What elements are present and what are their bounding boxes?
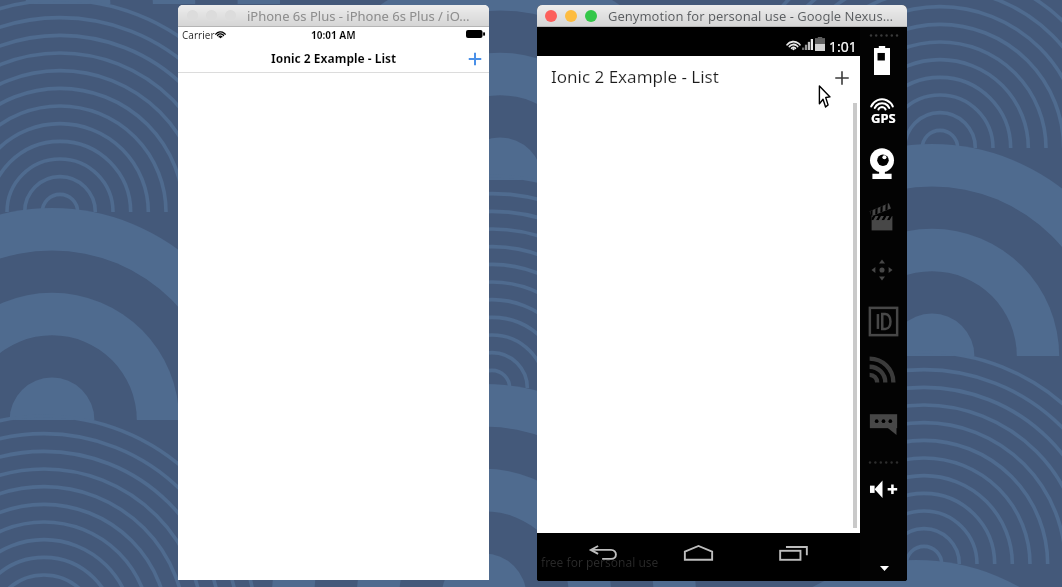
- button[interactable]: GPS: [865, 93, 899, 129]
- button[interactable]: Camera: [867, 146, 897, 183]
- staticText: free for personal use: [541, 554, 659, 570]
- button[interactable]: Minimise: [565, 10, 577, 22]
- button[interactable]: More options: [871, 558, 897, 578]
- button[interactable]: Network: [866, 354, 898, 388]
- staticText: Ionic 2 Example - List: [271, 50, 397, 66]
- button[interactable]: Identifiers: [866, 304, 900, 339]
- staticText: 10:01 AM: [311, 28, 356, 42]
- staticText: Ionic 2 Example - List: [551, 65, 719, 88]
- staticText: Carrier: [182, 28, 215, 42]
- staticText: iPhone 6s Plus - iPhone 6s Plus / iO…: [247, 7, 470, 25]
- staticText: 1:01: [829, 37, 857, 56]
- button[interactable]: Battery: [869, 42, 895, 79]
- button[interactable]: Volume up: [865, 471, 901, 507]
- button[interactable]: Close: [545, 10, 557, 22]
- button[interactable]: Back: [581, 534, 627, 578]
- button[interactable]: Screen recording: [867, 198, 897, 234]
- button[interactable]: Recent apps: [771, 534, 817, 578]
- button[interactable]: Add: [464, 48, 486, 70]
- button[interactable]: Add: [829, 65, 855, 91]
- button[interactable]: Zoom: [585, 10, 597, 22]
- button[interactable]: Accelerometer: [866, 253, 898, 287]
- staticText: Genymotion for personal use - Google Nex…: [608, 7, 893, 25]
- button[interactable]: Messaging: [866, 406, 900, 440]
- button[interactable]: Home: [675, 534, 721, 578]
- staticText: GPS: [871, 109, 896, 127]
